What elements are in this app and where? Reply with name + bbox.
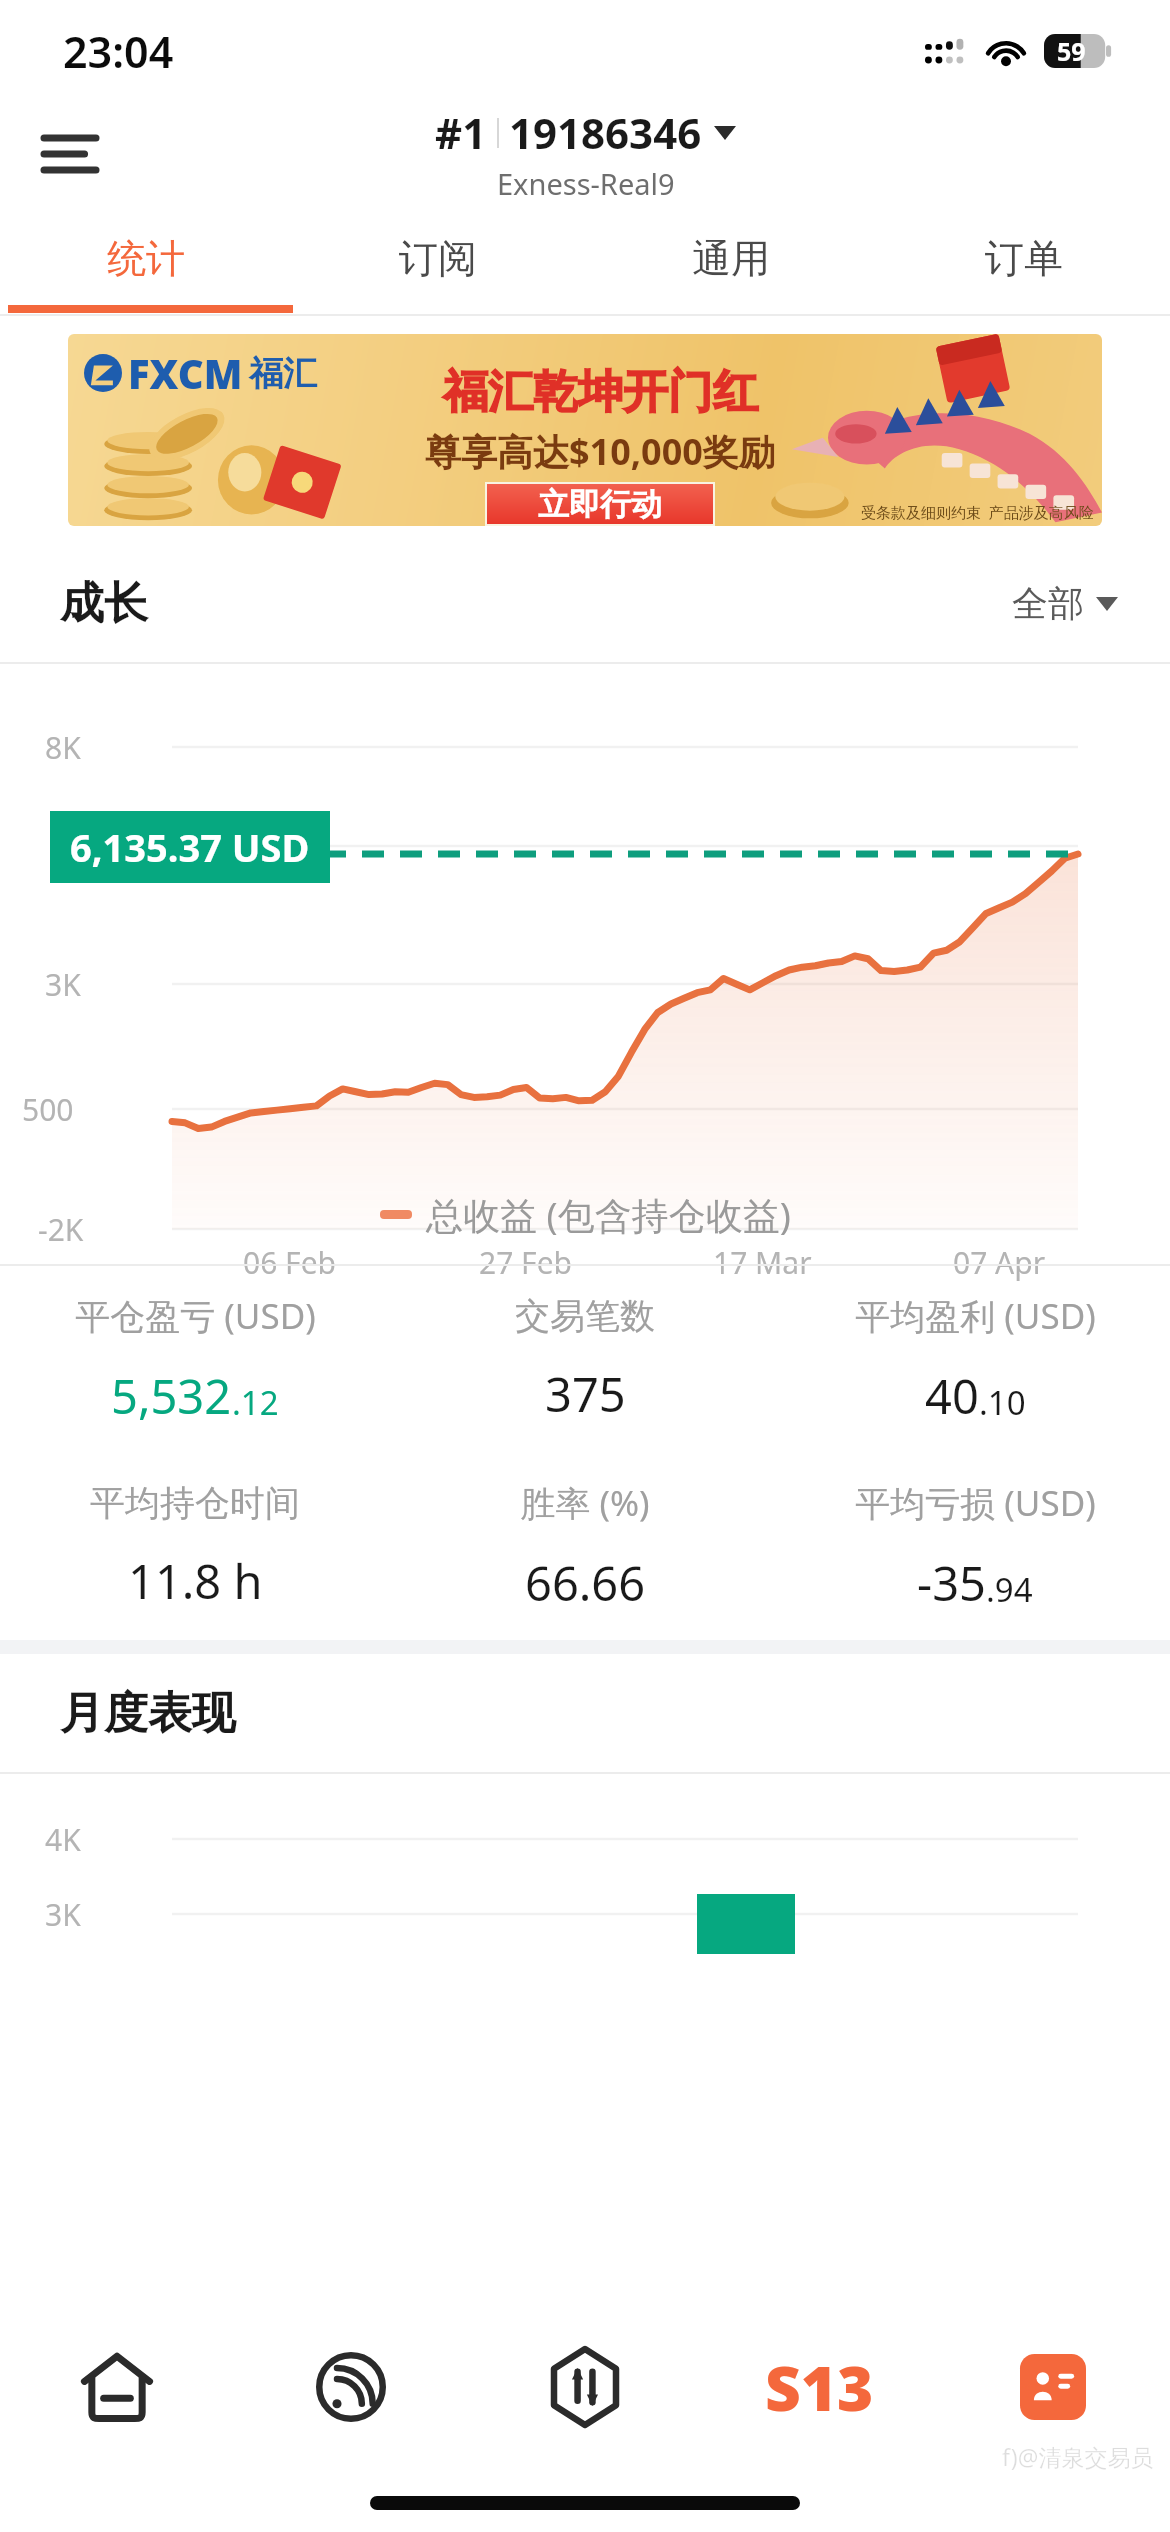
staticText: 福汇	[249, 352, 317, 395]
staticText: 平均盈利 (USD)	[855, 1292, 1096, 1340]
staticText: 平仓盈亏 (USD)	[75, 1292, 316, 1340]
staticText: 23:04	[63, 22, 174, 81]
staticText: 全部	[1012, 581, 1084, 626]
staticText: 尊享高达$10,000奖励	[425, 427, 775, 476]
staticText: 59	[1057, 34, 1086, 68]
button[interactable]: Account	[936, 2312, 1170, 2462]
staticText: 平均亏损 (USD)	[855, 1479, 1096, 1527]
staticText: .94	[986, 1567, 1033, 1612]
staticText: 总收益 (包含持仓收益)	[426, 1189, 791, 1240]
staticText: 胜率 (%)	[520, 1479, 650, 1527]
staticText: 3K	[45, 964, 81, 1005]
staticText: 4K	[45, 1819, 81, 1860]
button[interactable]: 统计	[0, 212, 292, 305]
button[interactable]: S13	[702, 2312, 936, 2462]
staticText: 立即行动	[538, 485, 662, 524]
staticText: #1	[435, 104, 487, 161]
staticText: 500	[22, 1089, 74, 1130]
button[interactable]: 立即行动	[487, 484, 713, 524]
staticText: f)@清泉交易员	[1002, 2441, 1154, 2472]
staticText: 27 Feb	[479, 1242, 573, 1283]
staticText: 375	[545, 1362, 626, 1426]
staticText: 受条款及细则约束 产品涉及高风险	[861, 502, 1094, 522]
staticText: S13	[765, 2345, 874, 2429]
staticText: .12	[232, 1380, 279, 1425]
staticText: 06 Feb	[243, 1242, 337, 1283]
button[interactable]: 通用	[584, 212, 877, 305]
button[interactable]: #1	[435, 104, 736, 203]
staticText: 40	[925, 1364, 979, 1428]
button[interactable]: Transfer	[468, 2312, 702, 2462]
staticText: 成长	[60, 576, 148, 631]
staticText: 交易笔数	[515, 1294, 655, 1338]
staticText: 19186346	[509, 104, 702, 161]
staticText: 统计	[107, 234, 185, 283]
staticText: 66.66	[525, 1551, 646, 1615]
button[interactable]: 订单	[877, 212, 1170, 305]
staticText: FXCM	[128, 346, 243, 400]
staticText: 福汇乾坤开门红	[443, 364, 758, 421]
staticText: 11.8 h	[128, 1549, 263, 1613]
button[interactable]: Menu	[28, 112, 112, 196]
staticText: 平均持仓时间	[90, 1481, 300, 1525]
staticText: 订阅	[399, 234, 477, 283]
button[interactable]: FXCM promotion	[68, 334, 1102, 526]
staticText: -2K	[38, 1209, 84, 1250]
button[interactable]: 订阅	[292, 212, 584, 305]
button[interactable]: Home	[0, 2312, 234, 2462]
button[interactable]: 全部	[1012, 581, 1118, 626]
button[interactable]: Signals	[234, 2312, 468, 2462]
staticText: 月度表现	[60, 1686, 236, 1741]
staticText: 17 Mar	[713, 1242, 812, 1283]
staticText: 07 Apr	[953, 1242, 1046, 1283]
staticText: 8K	[45, 727, 81, 768]
staticText: 5,532	[111, 1364, 232, 1428]
staticText: 6,135.37 USD	[70, 821, 310, 873]
staticText: -35	[917, 1551, 986, 1615]
staticText: 3K	[45, 1894, 81, 1935]
staticText: 订单	[985, 234, 1063, 283]
staticText: .10	[979, 1380, 1026, 1425]
staticText: 通用	[692, 234, 770, 283]
staticText: Exness-Real9	[497, 164, 675, 203]
